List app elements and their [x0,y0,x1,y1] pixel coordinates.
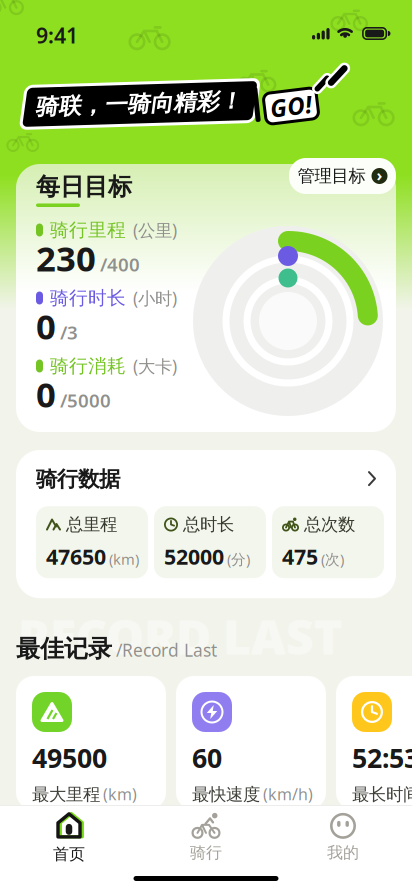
staticText: 60 [192,740,222,775]
staticText: (分) [227,549,250,569]
staticText: (km) [103,783,137,805]
staticText: (km) [109,549,139,569]
staticText: 管理目标 [297,165,365,187]
staticText: 230 [36,235,96,281]
button[interactable]: 49500 [16,676,166,810]
staticText: 475 [282,542,318,570]
staticText: 骑行数据 [36,466,120,492]
staticText: 每日目标 [36,172,132,201]
staticText: 52:53:4 [352,740,412,775]
button[interactable]: 60 [176,676,326,810]
staticText: › [376,164,382,186]
staticText: 最佳记录 [16,634,112,663]
staticText: 最大里程 [32,784,100,805]
staticText: 骑联，一骑向精彩！ [36,94,243,121]
staticText: 我的 [327,843,359,863]
staticText: GO! [270,90,312,122]
button[interactable]: 52:53:4 [336,676,412,810]
staticText: (次) [321,549,344,569]
button[interactable]: 骑行数据 [16,450,396,598]
staticText: /3 [60,320,78,345]
button[interactable]: 首页 [0,806,137,870]
staticText: 总里程 [66,514,117,535]
staticText: 9:41 [36,21,78,49]
staticText: 最快速度 [192,784,260,805]
staticText: 最长时间 [352,784,412,805]
staticText: 骑行 [190,843,222,863]
staticText: /5000 [60,388,111,413]
staticText: (公里) [133,218,177,241]
staticText: 0 [36,371,56,417]
button[interactable]: 骑行 [137,806,274,870]
staticText: 骑行里程 [50,218,126,241]
staticText: 49500 [32,740,107,775]
button[interactable]: 我的 [274,806,411,870]
staticText: 47650 [46,542,106,570]
staticText: 骑行时长 [50,286,126,309]
staticText: (km/h) [263,783,313,805]
staticText: /400 [100,252,140,277]
staticText: 总时长 [183,514,234,535]
staticText: /Record Last [116,638,217,661]
staticText: 52000 [164,542,224,570]
staticText: 首页 [53,844,85,864]
staticText: (小时) [133,286,177,309]
staticText: 0 [36,303,56,349]
staticText: (大卡) [133,354,177,377]
staticText: RECORD LAST [18,604,342,668]
button[interactable]: 管理目标 [289,158,396,194]
staticText: 骑行消耗 [50,354,126,377]
staticText: 总次数 [304,514,355,535]
